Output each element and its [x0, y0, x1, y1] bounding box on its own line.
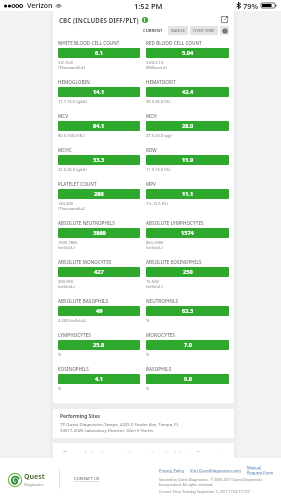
staticText: 1500-7800 [58, 240, 78, 245]
button[interactable]: RANGE [168, 26, 188, 35]
staticText: 200-950 [58, 279, 74, 284]
button[interactable]: MCV [58, 113, 140, 138]
staticText: Performing Sites [60, 413, 100, 420]
button[interactable]: Test information [142, 17, 148, 23]
button[interactable]: ABSOLUTE EOSINOPHILS [146, 259, 229, 289]
staticText: Verizon [27, 1, 53, 11]
button[interactable]: CONTACT US [74, 476, 100, 482]
button[interactable]: ABSOLUTE MONOCYTES [58, 259, 140, 289]
button[interactable]: MCH [146, 113, 229, 138]
staticText: 62.3 [182, 307, 194, 315]
staticText: 35.0-45.0 (%) [146, 99, 170, 104]
staticText: 427 [94, 268, 104, 276]
button[interactable]: Settings [220, 26, 229, 35]
staticText: OVER TIME [193, 28, 215, 34]
staticText: % [146, 318, 150, 323]
staticText: HEMOGLOBIN [58, 79, 90, 85]
staticText: 3.80-5.10 [146, 60, 164, 65]
button[interactable]: HEMOGLOBIN [58, 79, 140, 104]
staticText: 7.5-12.5 (fL) [146, 201, 168, 206]
staticText: % [58, 386, 62, 391]
button[interactable]: Manual Request Form [247, 465, 277, 475]
staticText: 84.1 [93, 122, 105, 130]
staticText: 288 [94, 190, 104, 198]
button[interactable]: Quest Diagnostics [8, 472, 45, 487]
staticText: 32.0-36.0 (g/dL) [58, 167, 88, 172]
staticText: ABSOLUTE LYMPHOCYTES [146, 220, 204, 226]
staticText: RDW [146, 147, 157, 153]
staticText: These results have been sent to the pers… [63, 449, 225, 452]
staticText: 28.0 [182, 122, 194, 130]
staticText: HEMATOCRIT [146, 79, 176, 85]
staticText: 1:52 PM [134, 1, 163, 11]
staticText: 140-400 [58, 201, 74, 206]
staticText: % [58, 352, 62, 357]
button[interactable]: WHITE BLOOD CELL COUNT [58, 40, 140, 70]
staticText: 3.8-10.8 [58, 60, 73, 65]
button[interactable]: PLATELET COUNT [58, 181, 140, 211]
staticText: (Thousand/uL) [58, 206, 86, 211]
staticText: CONTACT US [74, 476, 100, 482]
staticText: 11.9 [182, 156, 194, 164]
staticText: 14.1 [93, 88, 105, 96]
button[interactable]: MONOCYTES [146, 332, 229, 357]
staticText: 27.0-33.0 (pg) [146, 133, 172, 138]
staticText: ABSOLUTE MONOCYTES [58, 259, 112, 265]
staticText: 33617-2026 Laboratory Director: Glen S H… [60, 427, 154, 433]
staticText: 6.1 [95, 49, 103, 57]
staticText: ABSOLUTE EOSINOPHILS [146, 259, 202, 265]
staticText: Diagnostics [24, 482, 44, 487]
staticText: ABSOLUTE NEUTROPHILS [58, 220, 115, 226]
button[interactable]: ABSOLUTE BASOPHILS [58, 298, 140, 323]
button[interactable]: NEUTROPHILS [146, 298, 229, 323]
staticText: ABSOLUTE BASOPHILS [58, 298, 109, 304]
staticText: TP-Quest Diagnostics-Tampa, 4225 E Fowle… [60, 421, 179, 427]
staticText: 250 [183, 268, 193, 276]
staticText: 49 [96, 307, 103, 315]
staticText: (Million/uL) [146, 65, 168, 70]
staticText: BASOPHILS [146, 366, 172, 372]
staticText: MCV [58, 113, 69, 119]
staticText: 11.0-15.0 (%) [146, 167, 170, 172]
staticText: Current Time: Tuesday September 5, 2017 … [159, 489, 251, 494]
button[interactable]: BASOPHILS [146, 366, 229, 391]
button[interactable]: EOSINOPHILS [58, 366, 140, 391]
staticText: RED BLOOD CELL COUNT [146, 40, 202, 46]
staticText: NEUTROPHILS [146, 298, 178, 304]
button[interactable]: Privacy Policy [159, 468, 185, 473]
staticText: WHITE BLOOD CELL COUNT [58, 40, 120, 46]
staticText: CURRENT [143, 28, 163, 34]
button[interactable]: ABSOLUTE NEUTROPHILS [58, 220, 140, 250]
button[interactable]: Visit QuestDiagnostics.com [190, 468, 242, 473]
staticText: 4.1 [95, 375, 103, 383]
staticText: (cells/uL) [58, 245, 75, 250]
staticText: 79% [243, 1, 259, 11]
staticText: 1574 [181, 229, 194, 237]
staticText: % [146, 352, 150, 357]
staticText: 7.0 [184, 341, 192, 349]
staticText: 80.0-100.0 (fL) [58, 133, 85, 138]
staticText: % [146, 386, 150, 391]
button[interactable]: ABSOLUTE LYMPHOCYTES [146, 220, 229, 250]
button[interactable]: RED BLOOD CELL COUNT [146, 40, 229, 70]
staticText: CBC (INCLUDES DIFF/PLT) [59, 16, 139, 24]
button[interactable]: HEMATOCRIT [146, 79, 229, 104]
button[interactable]: Share [220, 15, 229, 24]
staticText: RANGE [171, 28, 185, 34]
staticText: MONOCYTES [146, 332, 175, 338]
staticText: i [144, 17, 146, 23]
staticText: (cells/uL) [146, 284, 163, 289]
staticText: MCH [146, 113, 157, 119]
button[interactable]: RDW [146, 147, 229, 172]
staticText: (cells/uL) [58, 284, 75, 289]
staticText: 15-500 [146, 279, 159, 284]
staticText: 25.8 [93, 341, 105, 349]
staticText: EOSINOPHILS [58, 366, 89, 372]
staticText: PLATELET COUNT [58, 181, 97, 187]
button[interactable]: LYMPHOCYTES [58, 332, 140, 357]
staticText: 3860 [93, 229, 106, 237]
button[interactable]: MCHC [58, 147, 140, 172]
button[interactable]: OVER TIME [190, 26, 218, 35]
button[interactable]: CURRENT [140, 26, 166, 35]
button[interactable]: MPV [146, 181, 229, 206]
